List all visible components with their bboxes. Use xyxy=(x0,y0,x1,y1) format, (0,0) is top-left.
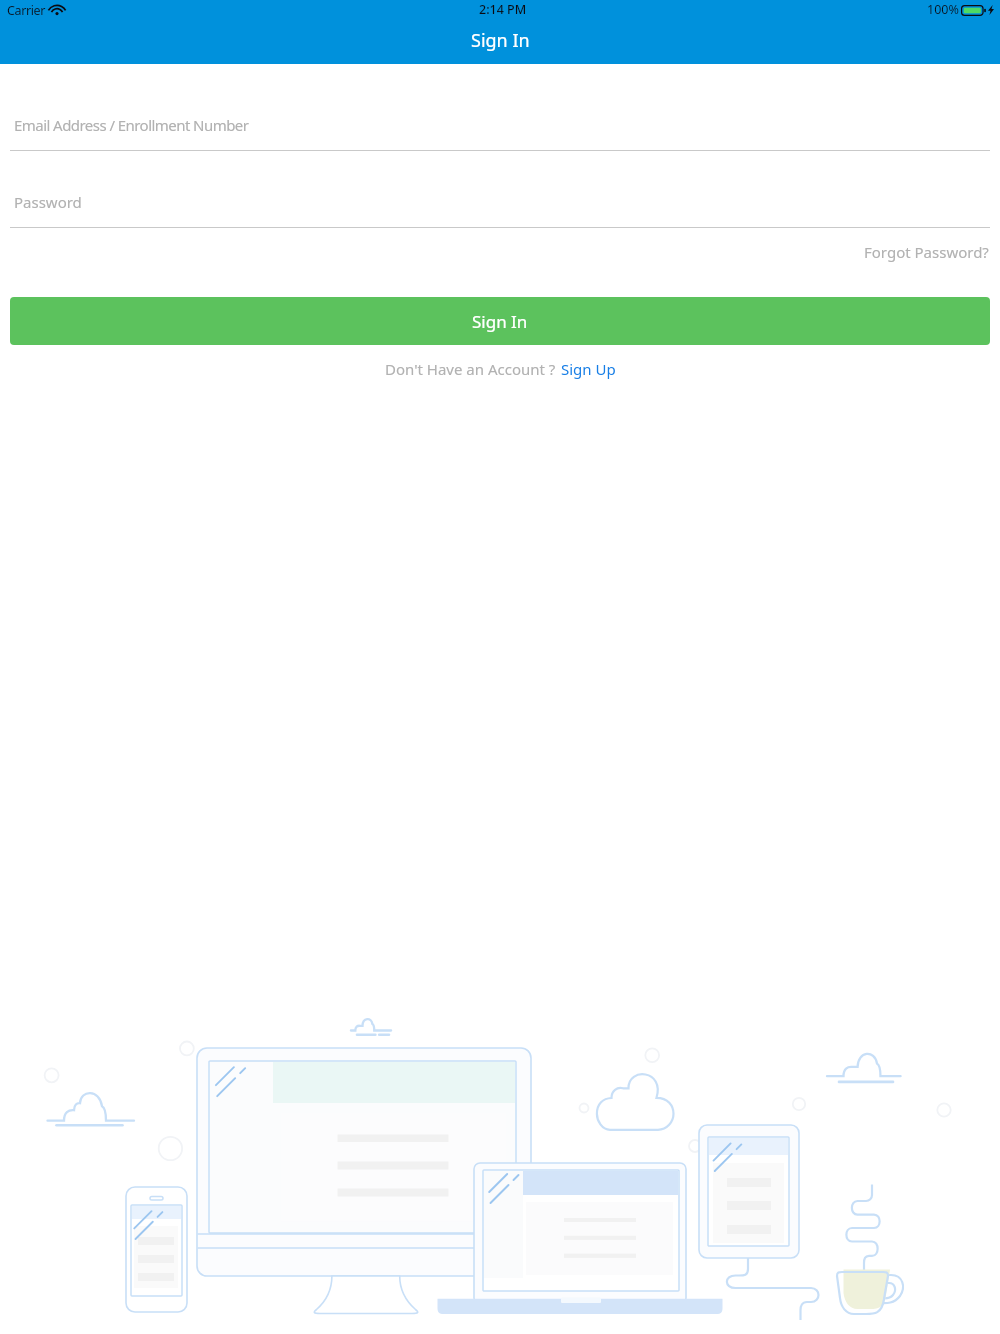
button[interactable]: Password xyxy=(0,192,1000,228)
button[interactable]: Sign Up xyxy=(561,359,616,379)
staticText: 100% xyxy=(927,1,959,18)
staticText: Don't Have an Account ? xyxy=(385,359,556,379)
staticText: Email Address / Enrollment Number xyxy=(14,115,249,135)
staticText: Sign In xyxy=(472,310,528,333)
button[interactable]: Sign In xyxy=(10,297,990,345)
button[interactable]: Forgot Password? xyxy=(864,241,1000,263)
staticText: Password xyxy=(14,192,82,212)
other: Wi-Fi xyxy=(50,5,64,15)
staticText: Sign In xyxy=(471,28,530,53)
other: Battery 100 percent xyxy=(961,5,986,16)
button[interactable]: Email Address / Enrollment Number xyxy=(0,115,1000,151)
staticText: Carrier xyxy=(7,2,46,19)
staticText: Sign Up xyxy=(561,359,616,379)
staticText: Forgot Password? xyxy=(864,242,989,262)
staticText: 2:14 PM xyxy=(479,1,527,18)
other: Charging xyxy=(988,5,994,15)
